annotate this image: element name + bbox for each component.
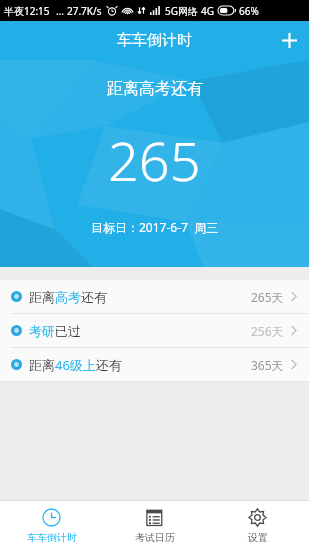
button[interactable]: Add countdown xyxy=(270,21,309,60)
button[interactable]: 考试日历 xyxy=(103,501,206,550)
button[interactable]: 车车倒计时 xyxy=(0,501,103,550)
button[interactable]: 距离高考还有 xyxy=(0,280,309,313)
staticText: 距离高考还有 xyxy=(29,289,107,305)
staticText: … xyxy=(56,4,64,18)
staticText: 考试日历 xyxy=(135,531,175,544)
button[interactable]: 考研已过 xyxy=(0,314,309,347)
staticText: 5G网络 xyxy=(165,4,198,18)
staticText: 265天 xyxy=(251,289,284,305)
staticText: 半夜12:15 xyxy=(4,4,50,18)
staticText: 设置 xyxy=(248,531,268,544)
staticText: 车车倒计时 xyxy=(117,31,192,50)
button[interactable]: 距离46级上还有 xyxy=(0,348,309,381)
staticText: 目标日：2017-6-7 周三 xyxy=(91,219,219,235)
staticText: 4G xyxy=(201,4,214,18)
staticText: 66% xyxy=(239,4,259,18)
button[interactable]: 设置 xyxy=(206,501,309,550)
staticText: 265 xyxy=(108,123,201,197)
staticText: 考研已过 xyxy=(29,323,81,339)
staticText: 365天 xyxy=(251,357,284,373)
staticText: 距离高考还有 xyxy=(107,79,203,99)
staticText: 256天 xyxy=(251,323,284,339)
staticText: 车车倒计时 xyxy=(27,531,77,544)
staticText: 距离46级上还有 xyxy=(29,356,122,374)
staticText: 27.7K/s xyxy=(67,4,102,18)
